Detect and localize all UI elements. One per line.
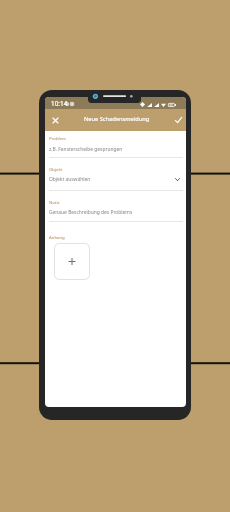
staticText: Objekt bbox=[49, 166, 63, 172]
staticText: Notiz bbox=[49, 199, 60, 205]
staticText: Neue Schadensmeldung bbox=[84, 115, 150, 123]
staticText: z.B. Fensterscheibe gesprungen bbox=[49, 146, 123, 153]
staticText: Problem bbox=[49, 135, 67, 141]
button[interactable]: Schließen bbox=[47, 112, 63, 128]
staticText: Objekt auswählen bbox=[49, 176, 91, 183]
staticText: 10:14 bbox=[51, 99, 68, 108]
button[interactable]: Speichern bbox=[170, 112, 186, 128]
staticText: Anhang bbox=[49, 234, 65, 240]
staticText: Genaue Beschreibung des Problems bbox=[49, 209, 133, 216]
button[interactable]: Anhang hinzufügen bbox=[54, 243, 90, 280]
